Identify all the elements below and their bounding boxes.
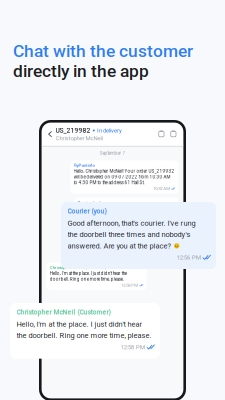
staticText: Christopher McNeil <box>56 135 103 142</box>
staticText: 12:58 PM <box>121 343 145 351</box>
staticText: Hello, I'm at the place. I just didn't h… <box>50 271 127 276</box>
staticText: Are you at the place? <box>78 217 116 222</box>
staticText: doorbell. Ring one more time, please. <box>50 277 124 282</box>
button[interactable]: More options <box>167 127 179 141</box>
staticText: Courier (you) <box>67 207 106 215</box>
staticText: 12:56 PM <box>153 223 170 228</box>
staticText: 10:32 AM <box>153 186 170 191</box>
staticText: Hello, Christopher McNeil! Your order US… <box>74 169 175 174</box>
staticText: Hello, I'm at the place. I just didn't h… <box>16 320 142 328</box>
staticText: to 4:30 PM to the address 61 Hall St. <box>74 180 145 185</box>
button[interactable]: Order details <box>155 127 167 141</box>
staticText: FlyPost info <box>74 163 95 168</box>
staticText: Courier (you) <box>78 200 101 205</box>
staticText: Christopher McNeil (Customer) <box>50 265 106 270</box>
staticText: Chat with the customer <box>13 41 193 61</box>
staticText: the doorbell three times and nobody's <box>67 230 190 239</box>
staticText: 12:56 PM <box>177 254 201 261</box>
staticText: answered. Are you at the place? <box>67 241 171 250</box>
staticText: will be delivered on 09-07-2022 from 10:… <box>74 174 171 180</box>
staticText: 12:58 PM <box>121 283 138 288</box>
staticText: Good afternoon, that's courier. I've run… <box>78 206 164 211</box>
staticText: In delivery <box>97 127 122 134</box>
staticText: US_219982 <box>56 127 91 134</box>
staticText: Good afternoon, that's courier. I've run… <box>67 219 195 227</box>
staticText: September 7 <box>99 151 125 156</box>
staticText: the doorbell. Ring one more time, please… <box>16 331 151 340</box>
staticText: Christopher McNeil (Customer) <box>16 308 110 316</box>
staticText: directly in the app <box>13 61 149 81</box>
button[interactable]: Back <box>45 125 56 143</box>
staticText: doorbell three times and nobody's answer… <box>78 211 166 217</box>
